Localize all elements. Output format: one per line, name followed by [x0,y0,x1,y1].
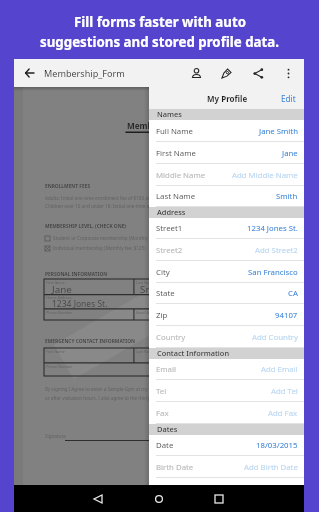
staticText: By signing I Agree to enter a Sample Gym… [45,386,156,392]
button[interactable]: Navigate up [15,59,43,87]
staticText: Zip [156,310,168,321]
staticText: Jane [52,283,72,296]
staticText: Names [157,109,182,119]
staticText: Edit [281,93,296,104]
button[interactable]: More options [274,59,302,87]
staticText: Add Email [261,364,298,375]
staticText: Email [156,364,177,375]
button[interactable]: City [149,261,304,283]
staticText: 18/03/2015 [256,440,298,451]
staticText: Individual membership (Monthly fee: $125… [53,245,146,251]
staticText: Add Fax [268,408,298,419]
button[interactable]: Zip [149,304,304,326]
staticText: ENROLLMENT FEES [45,183,91,190]
staticText: Home Address [46,295,72,300]
staticText: Address [157,207,186,217]
staticText: Jane [282,148,298,159]
staticText: Country [156,332,186,343]
staticText: Fill forms faster with auto [74,13,246,31]
staticText: 94107 [275,310,298,321]
button[interactable]: Birth Date [149,456,304,478]
staticText: EMERGENCY CONTACT INFORMATION [45,338,135,345]
staticText: Sm [140,283,155,296]
staticText: Street1 [156,223,183,234]
staticText: Dates [157,424,178,434]
button[interactable]: Share [244,59,272,87]
button[interactable]: Middle Name [149,164,304,186]
staticText: San Francisco [248,267,298,278]
staticText: PERSONAL INFORMATION [45,271,108,278]
staticText: Last Name [156,191,196,202]
button[interactable]: Edit [212,59,240,87]
staticText: Last Na [136,280,149,285]
staticText: Adults: Initial one-time enrollment fee … [45,195,154,201]
staticText: Signature [45,433,66,439]
staticText: First Name [46,349,65,354]
staticText: Add Middle Name [232,170,298,181]
button[interactable]: Country [149,326,304,348]
staticText: CA [288,288,298,299]
staticText: Tel [156,386,167,397]
staticText: Membership Application [127,120,227,131]
staticText: State [156,288,175,299]
button[interactable]: Edit [275,89,302,108]
staticText: Add Tel [271,386,298,397]
staticText: suggestions and stored profile data. [40,33,279,51]
staticText: 1234 Jones St. [247,223,298,234]
staticText: Full Name [156,126,193,137]
staticText: Email A [136,310,149,315]
button[interactable]: Street2 [149,239,304,261]
staticText: Contact Information [157,348,230,358]
staticText: Jane Smith [259,126,298,137]
button[interactable]: Recent apps [207,485,231,512]
button[interactable]: Home [147,485,171,512]
staticText: City [156,267,170,278]
button[interactable]: Date [149,434,304,456]
staticText: Student or Corporate membership (Monthly… [53,235,154,241]
button[interactable]: First Name [149,142,304,164]
staticText: Add Birth Date [244,462,298,473]
staticText: First Name [156,148,196,159]
button[interactable]: Back [86,485,110,512]
button[interactable]: Fax [149,402,304,424]
button[interactable]: State [149,282,304,304]
staticText: Children over 10 and under 18: Initial o… [45,203,155,209]
button[interactable]: Profile [182,59,210,87]
button[interactable]: Full Name [149,120,304,142]
staticText: First Name [46,280,65,285]
staticText: Middle Name [156,170,206,181]
staticText: Membership_Form [44,67,125,79]
staticText: My Profile [207,93,248,104]
staticText: Last Na [136,349,149,354]
staticText: Date [156,440,174,451]
button[interactable]: Tel [149,380,304,402]
staticText: Smith [276,191,298,202]
staticText: Birth Date [156,462,194,473]
staticText: Add Street2 [255,245,298,256]
staticText: MEMBERSHIP LEVEL, (CHECK ONE) [45,223,126,230]
staticText: 1234 Jones St. [52,298,108,310]
staticText: Phone Number [46,310,73,315]
button[interactable]: Email [149,358,304,380]
staticText: Phone Number [46,364,73,369]
staticText: Fax [156,408,169,419]
staticText: or after visitation hours. I also agree … [45,395,156,401]
staticText: Street2 [156,245,183,256]
staticText: Add Country [252,332,298,343]
button[interactable]: Street1 [149,217,304,239]
button[interactable]: Last Name [149,185,304,207]
